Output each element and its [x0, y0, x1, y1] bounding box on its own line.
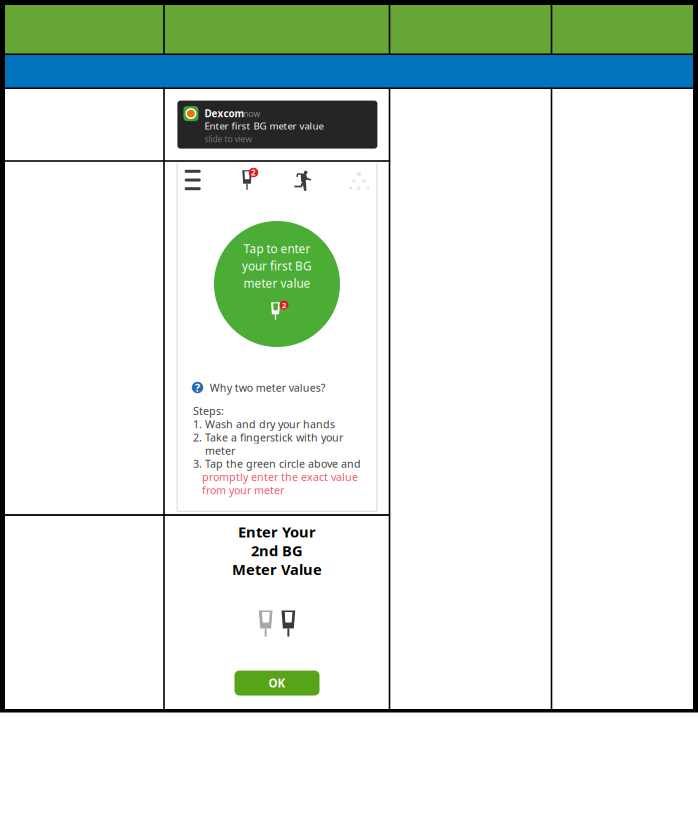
staticText: 2 — [282, 300, 286, 310]
staticText: ? — [195, 380, 200, 395]
button[interactable]: Activity — [289, 167, 315, 193]
staticText: Steps: — [193, 404, 224, 418]
staticText: promptly enter the exact value — [193, 470, 358, 484]
staticText: from your meter — [193, 483, 284, 497]
staticText: meter value — [243, 275, 310, 291]
staticText: Meter Value — [232, 559, 322, 579]
button[interactable]: Tap to enter your first BG meter value — [214, 221, 340, 347]
button[interactable]: OK — [234, 670, 319, 695]
staticText: 3. Tap the green circle above and — [193, 456, 361, 471]
staticText: meter — [193, 443, 235, 458]
button[interactable]: More — [346, 168, 372, 194]
staticText: slide to view — [204, 133, 252, 145]
staticText: your first BG — [242, 258, 312, 274]
staticText: now — [243, 108, 260, 119]
staticText: Dexcom — [204, 107, 244, 120]
button[interactable]: Meter readings — [235, 167, 261, 193]
staticText: 2. Take a fingerstick with your — [193, 430, 343, 444]
button[interactable]: Menu — [181, 167, 205, 193]
staticText: Enter Your — [238, 522, 316, 542]
staticText: Why two meter values? — [210, 380, 326, 395]
staticText: Enter first BG meter value — [204, 119, 323, 132]
staticText: Tap to enter — [243, 241, 310, 257]
staticText: 2 — [251, 167, 256, 178]
staticText: 1. Wash and dry your hands — [193, 417, 335, 431]
staticText: OK — [268, 675, 285, 691]
button[interactable]: ? — [192, 380, 326, 395]
button[interactable]: Dexcom — [177, 101, 377, 149]
staticText: 2nd BG — [251, 540, 303, 560]
